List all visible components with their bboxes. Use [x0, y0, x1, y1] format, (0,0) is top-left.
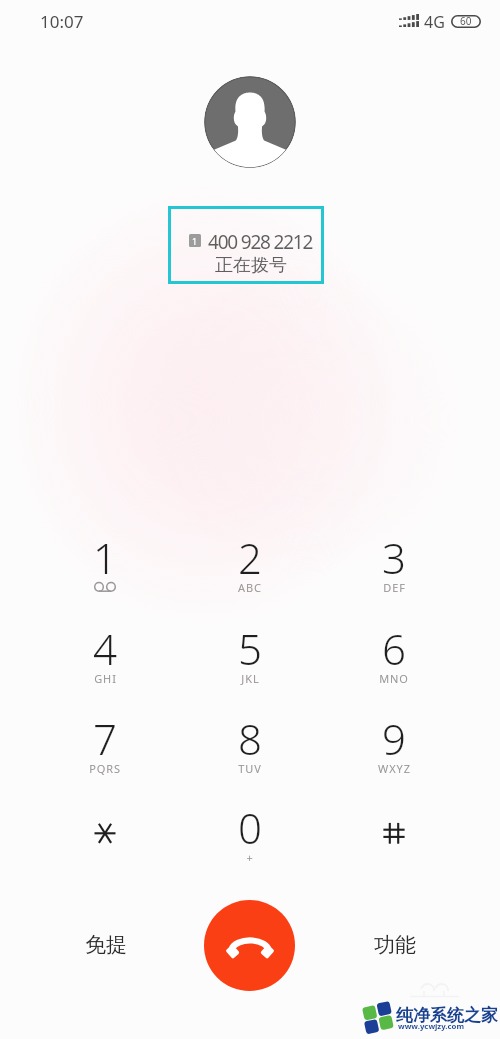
staticText: 免提 — [85, 932, 127, 958]
staticText: ABC — [238, 580, 262, 595]
button[interactable]: 0 + — [186, 785, 314, 873]
button[interactable]: 2 ABC — [186, 515, 314, 603]
staticText: 1 — [93, 529, 117, 575]
staticText: 1 — [192, 235, 198, 247]
button[interactable]: 7 PQRS — [41, 696, 169, 784]
staticText: DEF — [383, 580, 406, 595]
button[interactable]: Contact photo — [204, 76, 296, 168]
staticText: 4 — [93, 620, 117, 666]
staticText: 正在拨号 — [215, 254, 287, 277]
button[interactable]: 免提 — [56, 920, 156, 970]
staticText: 6 — [382, 620, 406, 666]
staticText: JKL — [241, 671, 260, 686]
staticText: www.ycwjzy.com — [398, 1021, 465, 1032]
staticText: 5 — [238, 620, 262, 666]
staticText: 4G — [424, 11, 445, 33]
staticText: 0 — [238, 799, 262, 845]
button[interactable]: End call — [204, 900, 295, 991]
button[interactable]: 6 MNO — [330, 606, 458, 694]
staticText: 400 928 2212 — [208, 229, 313, 255]
button[interactable]: 9 WXYZ — [330, 696, 458, 784]
staticText: + — [246, 850, 254, 865]
button[interactable]: Pound — [330, 785, 458, 873]
staticText: 2 — [238, 529, 262, 575]
button[interactable]: 1 — [41, 515, 169, 603]
staticText: 纯净系统之家 — [396, 1005, 498, 1026]
button[interactable]: 3 DEF — [330, 515, 458, 603]
staticText: PQRS — [89, 761, 121, 776]
button[interactable]: 400 928 2212, 正在拨号 — [168, 206, 324, 284]
staticText: TUV — [238, 761, 262, 776]
button[interactable]: 功能 — [345, 920, 445, 970]
staticText: 8 — [238, 710, 262, 756]
staticText: MNO — [379, 671, 409, 686]
button[interactable]: 8 TUV — [186, 696, 314, 784]
staticText: 9 — [382, 710, 406, 756]
other: Battery 60 percent — [451, 14, 481, 28]
button[interactable]: 5 JKL — [186, 606, 314, 694]
staticText: WXYZ — [378, 761, 411, 776]
staticText: 功能 — [374, 932, 416, 958]
staticText: 60 — [460, 14, 472, 28]
staticText: GHI — [94, 671, 117, 686]
staticText: 7 — [93, 710, 117, 756]
button[interactable]: Star — [41, 785, 169, 873]
staticText: 10:07 — [40, 10, 84, 33]
staticText: 3 — [382, 529, 406, 575]
button[interactable]: 4 GHI — [41, 606, 169, 694]
other: Signal strength — [399, 14, 419, 27]
